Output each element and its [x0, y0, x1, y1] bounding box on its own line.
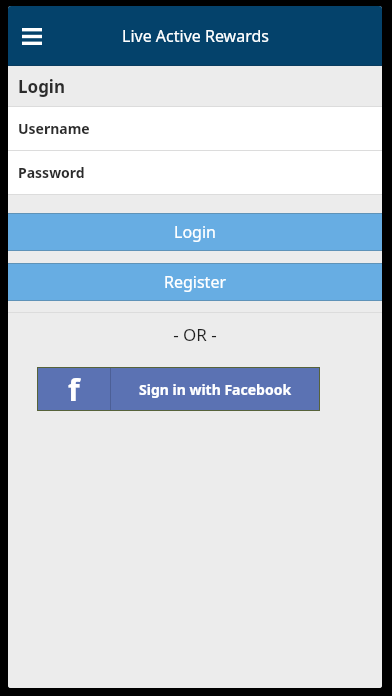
button[interactable]: Username [8, 107, 382, 150]
staticText: f [68, 369, 80, 410]
staticText: Register [164, 271, 227, 293]
button[interactable]: f [38, 368, 319, 410]
button[interactable]: Register [8, 264, 382, 300]
button[interactable]: Open navigation menu [14, 18, 50, 54]
staticText: Sign in with Facebook [139, 380, 292, 399]
staticText: Login [18, 75, 66, 98]
button[interactable]: Login [8, 214, 382, 250]
staticText: Login [174, 221, 216, 243]
staticText: Live Active Rewards [122, 25, 269, 47]
staticText: Username [18, 119, 90, 138]
staticText: - OR - [173, 323, 217, 346]
button[interactable]: Password [8, 151, 382, 194]
staticText: Password [18, 163, 85, 182]
